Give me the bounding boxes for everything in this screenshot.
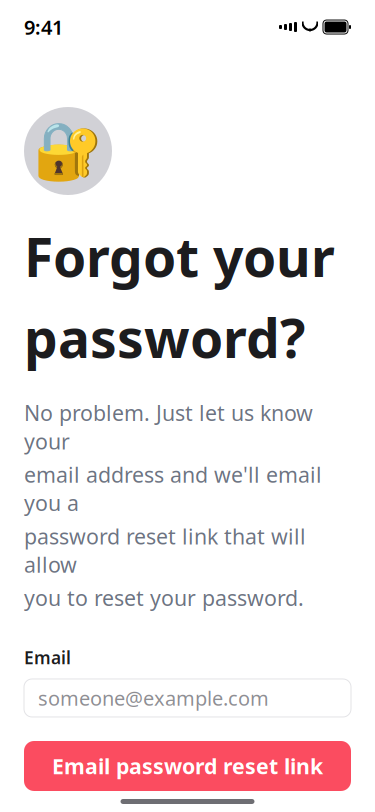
staticText: Forgot your — [24, 221, 335, 292]
staticText: No problem. Just let us know your — [24, 399, 313, 455]
staticText: password? — [24, 302, 305, 373]
button[interactable]: Email password reset link — [24, 741, 351, 791]
staticText: 🔐 — [33, 119, 103, 183]
button[interactable]: someone@example.com — [24, 679, 351, 717]
staticText: 9:41 — [24, 14, 63, 40]
staticText: email address and we'll email you a — [24, 460, 322, 517]
staticText: Email password reset link — [52, 752, 323, 780]
staticText: someone@example.com — [38, 685, 269, 711]
staticText: Email — [24, 646, 71, 669]
staticText: you to reset your password. — [24, 584, 304, 612]
staticText: password reset link that will allow — [24, 522, 306, 579]
